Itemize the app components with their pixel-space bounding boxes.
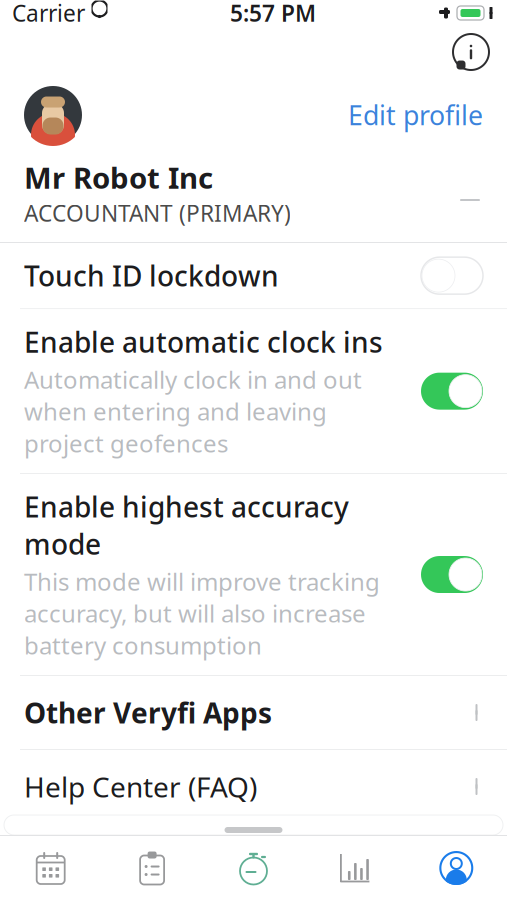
button[interactable]: Edit profile — [0, 78, 507, 242]
staticText: Enable automatic clock ins — [24, 323, 383, 360]
button[interactable]: Enable automatic clock ins — [0, 309, 507, 473]
staticText: Automatically clock in and out when ente… — [24, 363, 362, 459]
button[interactable]: Reports — [304, 836, 406, 900]
button[interactable]: Help Center (FAQ) — [0, 750, 507, 823]
button[interactable]: Timer — [203, 836, 304, 900]
staticText: Rate this app — [24, 842, 194, 879]
button[interactable]: Enable highest accuracy mode — [0, 474, 507, 675]
button[interactable]: Profile — [406, 836, 507, 900]
button[interactable]: Touch ID lockdown — [0, 243, 507, 308]
button[interactable]: Other Veryfi Apps — [0, 676, 507, 749]
staticText: Other Veryfi Apps — [24, 694, 272, 731]
staticText: Touch ID lockdown — [24, 257, 279, 294]
staticText: Mr Robot Inc — [24, 158, 213, 197]
staticText: Carrier — [12, 0, 85, 28]
button[interactable]: Rate this app — [0, 824, 507, 897]
staticText: This mode will improve tracking accuracy… — [24, 565, 380, 661]
staticText: Edit profile — [348, 97, 483, 133]
staticText: Enable highest accuracy mode — [24, 488, 349, 562]
staticText: 5:57 PM — [230, 0, 316, 28]
button[interactable]: Calendar — [0, 836, 101, 900]
button[interactable]: Info — [449, 30, 493, 74]
staticText: Help Center (FAQ) — [24, 768, 257, 805]
button[interactable]: Timesheets — [101, 836, 203, 900]
staticText: ACCOUNTANT (PRIMARY) — [24, 198, 291, 228]
